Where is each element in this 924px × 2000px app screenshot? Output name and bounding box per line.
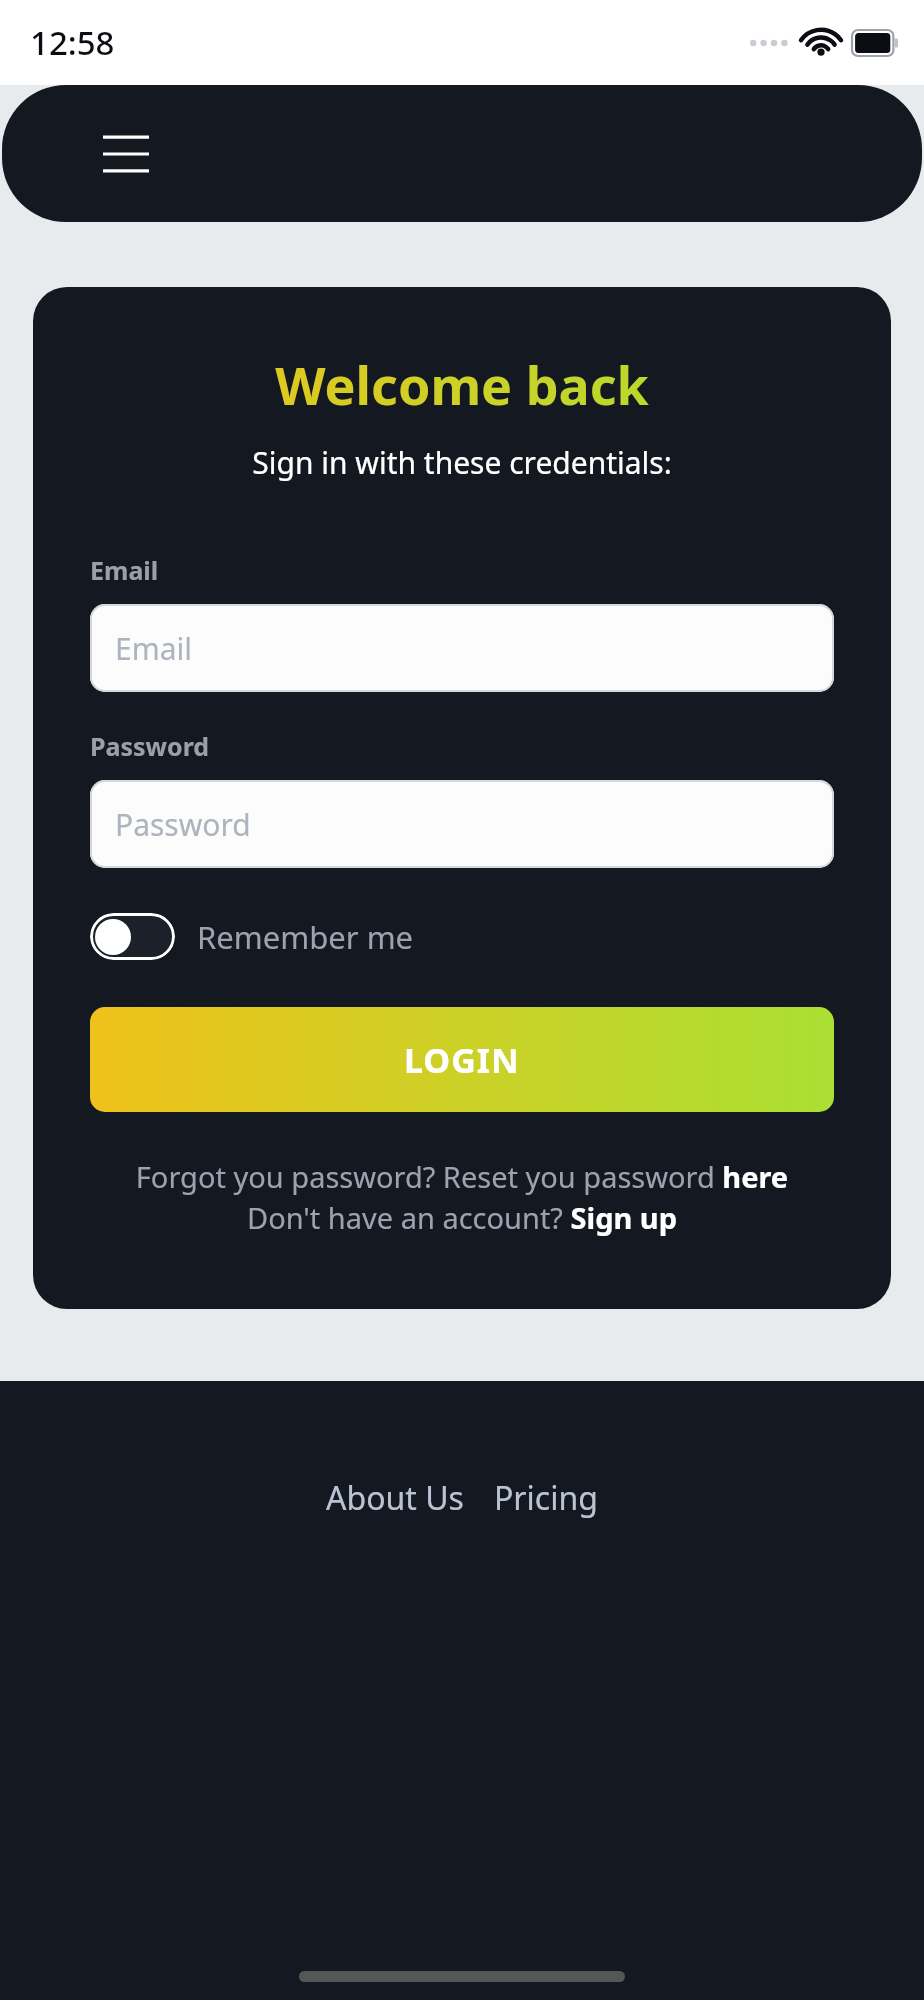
staticText: Welcome back xyxy=(90,349,834,420)
staticText: LOGIN xyxy=(404,1037,520,1083)
staticText: Password xyxy=(90,729,210,763)
staticText: Forgot you password? Reset you password … xyxy=(90,1157,834,1196)
staticText: Password xyxy=(115,804,251,845)
staticText: Pricing xyxy=(494,1476,598,1520)
button[interactable]: Pricing xyxy=(494,1476,598,1520)
staticText: Don't have an account? Sign up xyxy=(90,1198,834,1237)
button[interactable]: Remember me xyxy=(90,913,414,960)
button[interactable]: Don't have an account? Sign up xyxy=(90,1198,834,1237)
button[interactable]: Email xyxy=(90,604,834,692)
button[interactable]: LOGIN xyxy=(90,1007,834,1112)
staticText: Email xyxy=(90,553,159,587)
button[interactable]: Menu xyxy=(90,118,162,190)
staticText: Email xyxy=(115,628,193,669)
button[interactable]: Forgot you password? Reset you password … xyxy=(90,1157,834,1196)
staticText: 12:58 xyxy=(30,20,115,65)
staticText: About Us xyxy=(326,1476,464,1520)
button[interactable]: About Us xyxy=(326,1476,464,1520)
staticText: Remember me xyxy=(197,916,414,958)
button[interactable]: Password xyxy=(90,780,834,868)
staticText: Sign in with these credentials: xyxy=(90,442,834,483)
